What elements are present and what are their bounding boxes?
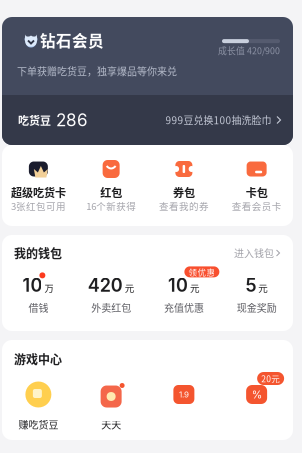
staticText: 10 xyxy=(22,274,42,296)
staticText: 999豆兑换100抽洗脸巾 xyxy=(165,113,271,127)
staticText: 充值优惠 xyxy=(164,300,204,315)
staticText: % xyxy=(252,388,262,401)
button[interactable]: 红包 xyxy=(75,145,148,226)
staticText: 3张红包可用 xyxy=(11,199,66,213)
staticText: 我的钱包 xyxy=(14,244,62,262)
staticText: 钻石会员 xyxy=(40,29,104,51)
button[interactable]: 420 xyxy=(75,271,148,315)
staticText: 元 xyxy=(125,281,135,295)
button[interactable]: % xyxy=(220,378,293,434)
button[interactable]: 5 xyxy=(220,271,293,315)
button[interactable]: 吃货豆 xyxy=(2,95,293,145)
staticText: 286 xyxy=(51,110,88,130)
staticText: 5 xyxy=(245,274,256,296)
button[interactable]: 卡包 xyxy=(220,145,293,226)
staticText: 万 xyxy=(44,281,54,295)
staticText: 借钱 xyxy=(28,300,48,315)
staticText: 游戏中心 xyxy=(14,350,62,368)
staticText: 现金奖励 xyxy=(237,300,277,315)
staticText: 券包 xyxy=(173,184,195,200)
staticText: 20元 xyxy=(261,372,280,385)
button[interactable]: 券包 xyxy=(147,145,220,226)
staticText: 查看我的券 xyxy=(159,199,209,213)
staticText: 赚吃货豆 xyxy=(18,417,58,431)
button[interactable]: 10 xyxy=(2,271,75,315)
button[interactable]: 天天 xyxy=(75,378,148,434)
staticText: 吃货豆 xyxy=(18,112,51,128)
staticText: 天天 xyxy=(101,417,121,431)
staticText: 卡包 xyxy=(246,184,268,200)
button[interactable]: 赚吃货豆 xyxy=(2,378,75,434)
staticText: 元 xyxy=(258,281,268,295)
staticText: 元 xyxy=(190,281,200,295)
button[interactable]: 进入钱包 xyxy=(234,246,281,260)
button[interactable]: 10 xyxy=(147,271,220,315)
staticText: 16个新获得 xyxy=(86,199,136,213)
staticText: 1.9 xyxy=(179,390,189,399)
button[interactable]: 1.9 xyxy=(147,378,220,434)
staticText: 超级吃货卡 xyxy=(11,184,66,200)
staticText: 红包 xyxy=(100,184,122,200)
staticText: 进入钱包 xyxy=(234,246,274,260)
staticText: 成长值 420/900 xyxy=(218,44,280,57)
staticText: 外卖红包 xyxy=(91,300,131,315)
button[interactable]: 超级吃货卡 xyxy=(2,145,75,226)
staticText: 下单获赠吃货豆，独享爆品等你来兑 xyxy=(17,64,177,78)
staticText: 420 xyxy=(88,274,123,296)
staticText: 查看会员卡 xyxy=(232,199,282,213)
staticText: 领优惠 xyxy=(188,266,215,278)
staticText: 10 xyxy=(168,274,188,296)
